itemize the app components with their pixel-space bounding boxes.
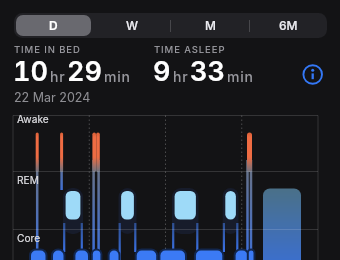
staticText: Awake: [17, 113, 49, 125]
staticText: 6M: [279, 18, 298, 33]
staticText: M: [205, 18, 216, 33]
button[interactable]: M: [171, 13, 249, 38]
staticText: 33: [190, 55, 225, 88]
staticText: 10: [13, 55, 48, 88]
button[interactable]: W: [93, 13, 171, 38]
button[interactable]: D: [16, 15, 91, 36]
staticText: 22 Mar 2024: [14, 90, 91, 105]
staticText: REM: [17, 174, 39, 186]
staticText: min: [227, 68, 254, 85]
staticText: W: [126, 18, 139, 33]
staticText: TIME ASLEEP: [154, 44, 226, 55]
button[interactable]: [302, 64, 323, 85]
staticText: 9: [153, 55, 171, 88]
staticText: TIME IN BED: [14, 44, 81, 55]
staticText: D: [49, 18, 58, 33]
staticText: min: [104, 68, 131, 85]
staticText: hr: [50, 68, 66, 85]
staticText: Core: [17, 232, 41, 244]
staticText: hr: [173, 68, 189, 85]
staticText: 29: [67, 55, 102, 88]
button[interactable]: 6M: [249, 13, 327, 38]
